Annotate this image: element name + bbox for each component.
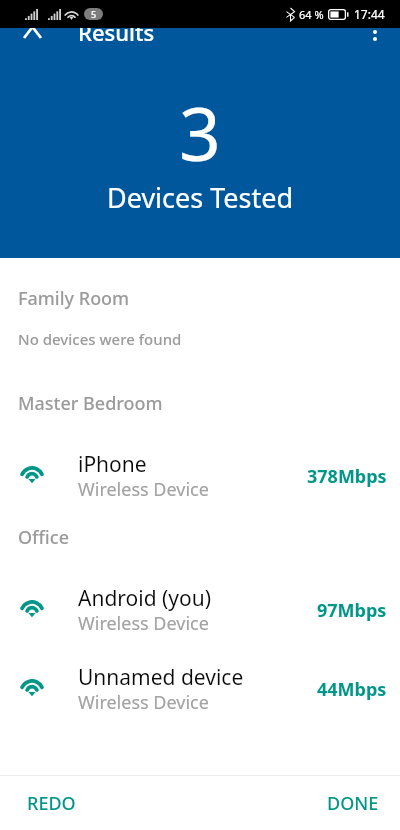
staticText: Results (78, 17, 155, 47)
button[interactable]: REDO (9, 776, 93, 830)
button[interactable]: More options (351, 8, 399, 56)
staticText: Wireless Device (78, 690, 209, 715)
staticText: Devices Tested (107, 179, 294, 216)
staticText: 64 % (299, 7, 324, 22)
button[interactable]: Collapse (8, 8, 56, 56)
staticText: 97Mbps (317, 598, 387, 623)
button[interactable]: Android (you) (0, 574, 400, 652)
staticText: Family Room (18, 286, 130, 311)
staticText: 3 (179, 83, 221, 182)
staticText: 378Mbps (307, 464, 387, 489)
staticText: Wireless Device (78, 611, 209, 636)
staticText: iPhone (78, 450, 147, 479)
button[interactable]: iPhone (0, 440, 400, 518)
staticText: Unnamed device (78, 663, 244, 692)
staticText: Master Bedroom (18, 391, 163, 416)
staticText: No devices were found (18, 329, 182, 349)
button[interactable]: Unnamed device (0, 653, 400, 731)
staticText: REDO (27, 791, 76, 816)
button[interactable]: DONE (311, 776, 395, 830)
staticText: Wireless Device (78, 477, 209, 502)
staticText: 5 (91, 8, 97, 20)
staticText: 44Mbps (317, 677, 387, 702)
staticText: DONE (327, 791, 379, 816)
staticText: Android (you) (78, 584, 212, 613)
staticText: Office (18, 525, 69, 550)
staticText: 17:44 (354, 6, 385, 22)
